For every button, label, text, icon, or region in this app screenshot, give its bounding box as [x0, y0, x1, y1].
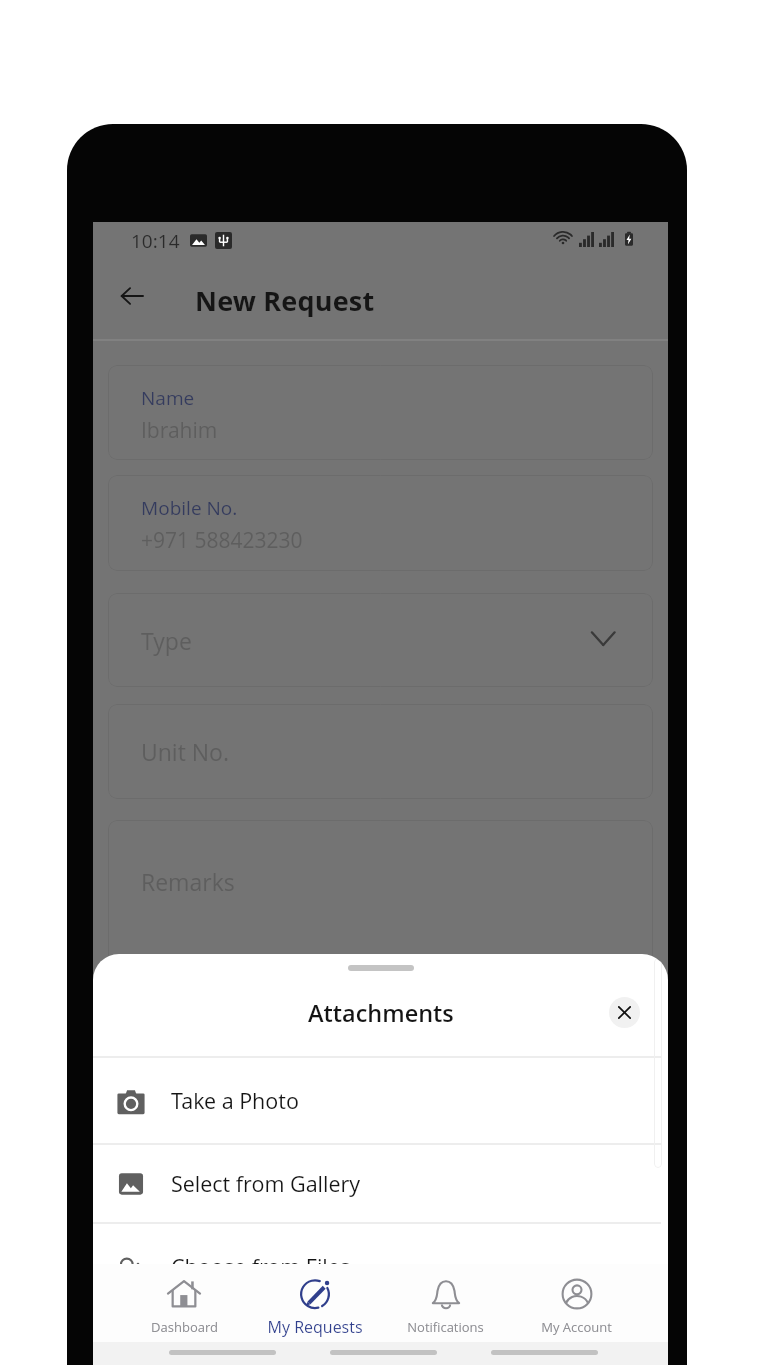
button[interactable]: Take a Photo: [93, 1058, 668, 1143]
staticText: Choose from Files: [171, 1252, 351, 1281]
button[interactable]: Name: [108, 365, 653, 460]
staticText: My Requests: [267, 1316, 363, 1338]
button[interactable]: Mobile No.: [108, 475, 653, 571]
staticText: 10:14: [131, 228, 180, 254]
staticText: Select from Gallery: [171, 1169, 361, 1198]
staticText: Ibrahim: [141, 416, 218, 445]
staticText: Take a Photo: [171, 1086, 299, 1115]
staticText: Remarks: [141, 866, 235, 897]
button[interactable]: Choose from Files: [93, 1224, 668, 1309]
staticText: Mobile No.: [141, 495, 238, 521]
staticText: Name: [141, 385, 195, 411]
button[interactable]: My Requests: [249, 1264, 380, 1338]
button[interactable]: Back: [106, 270, 158, 322]
staticText: New Request: [195, 282, 375, 319]
staticText: My Account: [541, 1318, 612, 1336]
staticText: Type: [141, 625, 192, 656]
button[interactable]: Dashboard: [119, 1264, 249, 1336]
button[interactable]: Notifications: [380, 1264, 511, 1336]
staticText: Dashboard: [151, 1318, 218, 1336]
staticText: +971 588423230: [141, 526, 303, 555]
button[interactable]: Select from Gallery: [93, 1145, 668, 1222]
button[interactable]: My Account: [511, 1264, 642, 1336]
button[interactable]: Remarks: [108, 820, 653, 995]
button[interactable]: Close: [609, 997, 640, 1028]
staticText: Attachments: [308, 997, 454, 1029]
staticText: Notifications: [407, 1318, 484, 1336]
staticText: Unit No.: [141, 736, 230, 767]
